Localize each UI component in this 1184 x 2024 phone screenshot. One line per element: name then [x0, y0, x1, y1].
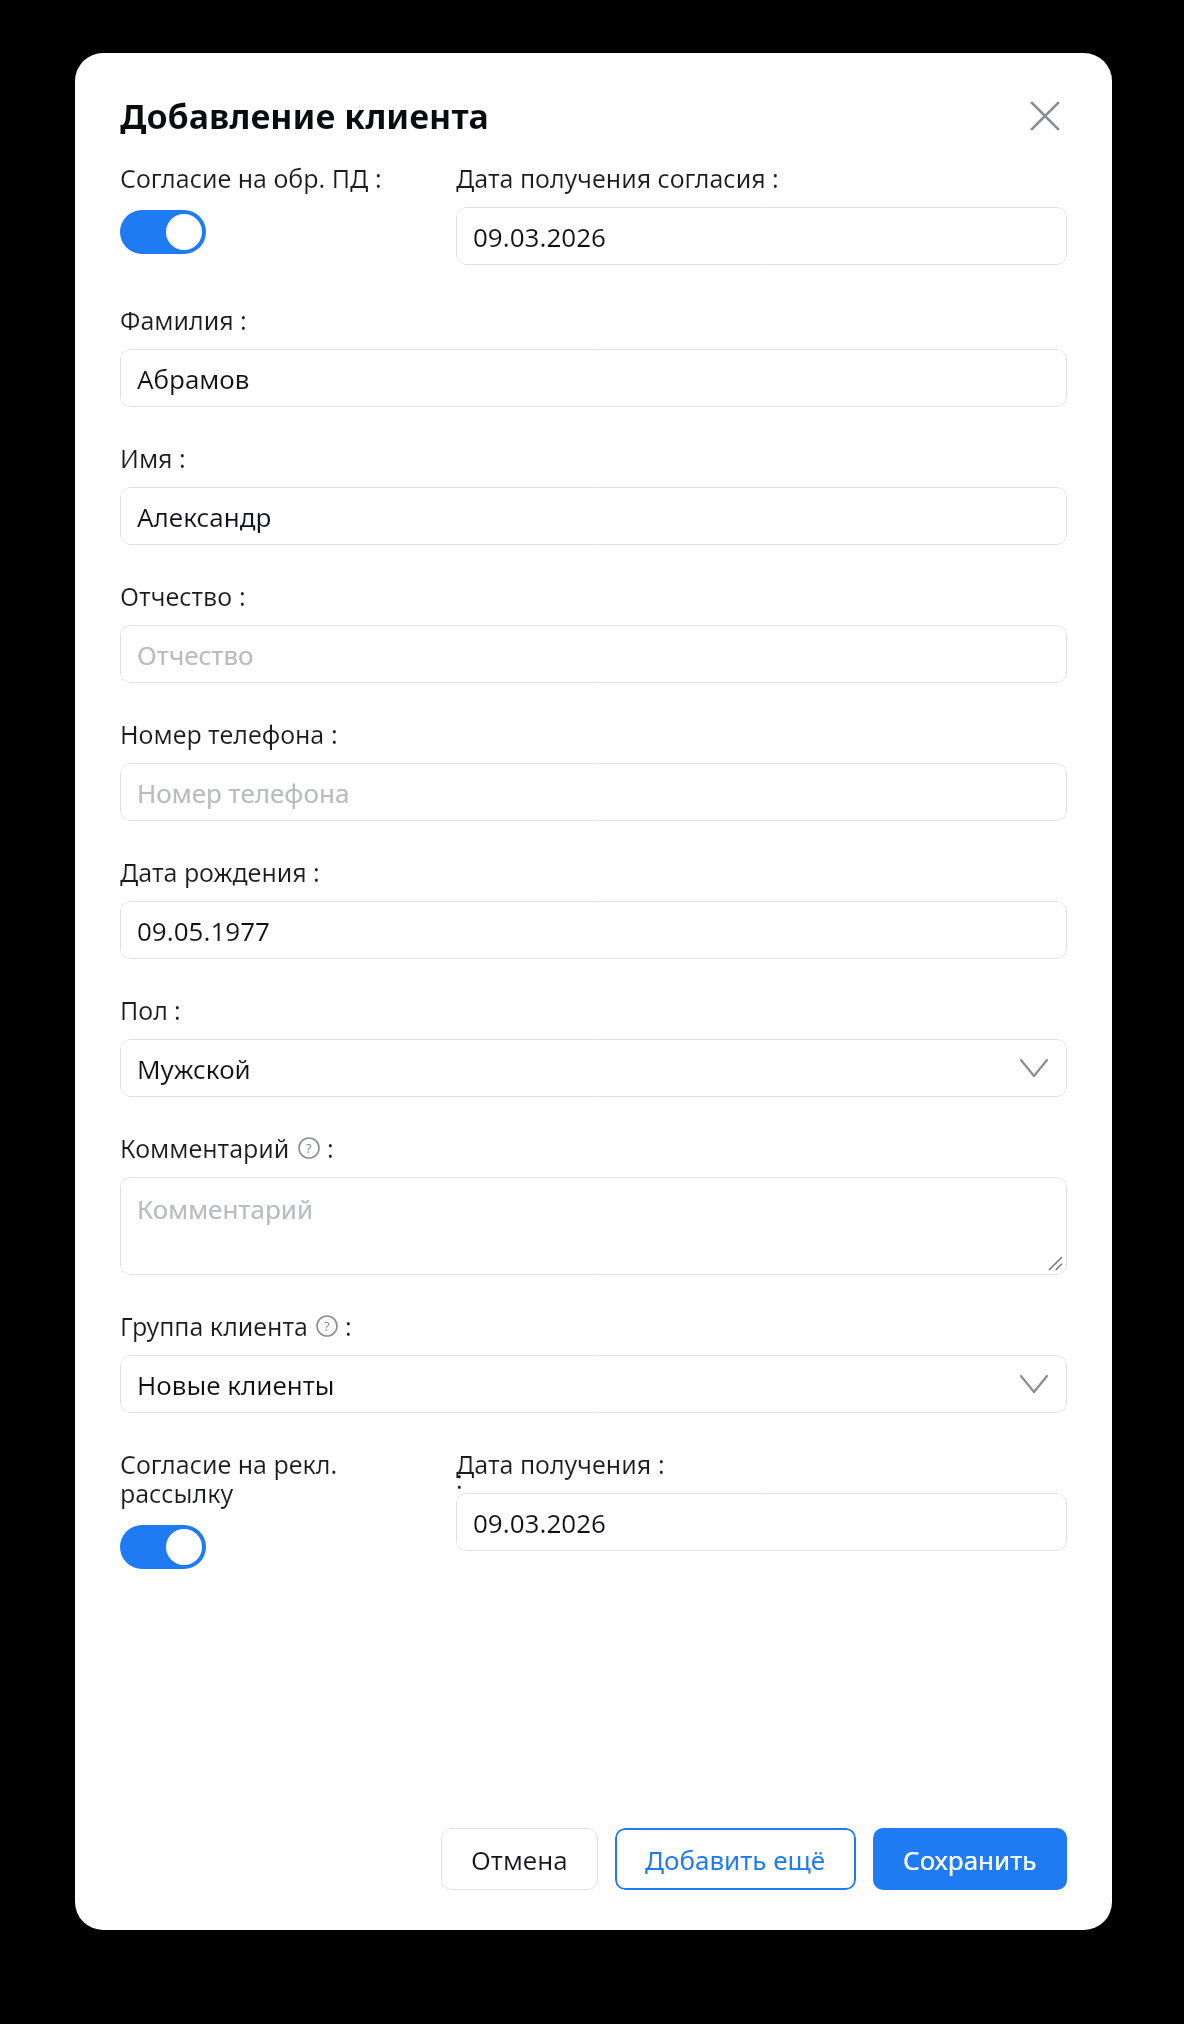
staticText: ?: [324, 1317, 330, 1335]
staticText: Мужской: [137, 1051, 251, 1086]
staticText: 09.03.2026: [473, 219, 606, 254]
staticText: :: [345, 1309, 352, 1343]
button[interactable]: 09.05.1977: [120, 901, 1067, 959]
staticText: Отчество: [137, 637, 254, 672]
staticText: Добавить ещё: [645, 1842, 826, 1877]
staticText: Комментарий: [120, 1131, 290, 1165]
staticText: :: [327, 1131, 334, 1165]
staticText: Отмена: [471, 1842, 568, 1877]
staticText: :: [239, 579, 246, 613]
staticText: Отчество: [120, 579, 233, 613]
button[interactable]: Добавить ещё: [615, 1828, 856, 1890]
staticText: :: [375, 161, 382, 195]
staticText: Добавление клиента: [120, 93, 489, 139]
staticText: Дата рождения: [120, 855, 307, 889]
staticText: Новые клиенты: [137, 1367, 335, 1402]
staticText: :: [174, 993, 181, 1027]
other: Подсказка: [298, 1137, 320, 1159]
staticText: Александр: [137, 499, 272, 534]
staticText: Номер телефона: [120, 717, 325, 751]
button[interactable]: Новые клиенты: [120, 1355, 1067, 1413]
staticText: :: [240, 303, 247, 337]
staticText: ?: [306, 1139, 312, 1157]
button[interactable]: Сохранить: [873, 1828, 1067, 1890]
button[interactable]: 09.03.2026: [456, 1493, 1067, 1551]
staticText: Согласие на рекл. рассылку: [120, 1447, 456, 1510]
button[interactable]: Переключатель включён: [120, 1525, 206, 1569]
staticText: Фамилия: [120, 303, 234, 337]
button[interactable]: Отчество: [120, 625, 1067, 683]
button[interactable]: Переключатель включён: [120, 210, 206, 254]
button[interactable]: 09.03.2026: [456, 207, 1067, 265]
staticText: Группа клиента: [120, 1309, 308, 1343]
button[interactable]: Абрамов: [120, 349, 1067, 407]
staticText: Дата получения согласия: [456, 161, 766, 195]
staticText: Дата получения: [456, 1447, 652, 1481]
button[interactable]: Номер телефона: [120, 763, 1067, 821]
button[interactable]: Комментарий: [120, 1177, 1067, 1275]
staticText: Сохранить: [903, 1842, 1037, 1877]
button[interactable]: Мужской: [120, 1039, 1067, 1097]
other: Подсказка: [316, 1315, 338, 1337]
staticText: Имя: [120, 441, 173, 475]
staticText: 09.05.1977: [137, 913, 270, 948]
staticText: Комментарий: [137, 1191, 314, 1226]
staticText: 09.03.2026: [473, 1505, 606, 1540]
staticText: :: [179, 441, 186, 475]
staticText: Согласие на обр. ПД: [120, 161, 369, 195]
button[interactable]: Александр: [120, 487, 1067, 545]
staticText: :: [772, 161, 779, 195]
staticText: Абрамов: [137, 361, 250, 396]
staticText: Номер телефона: [137, 775, 350, 810]
staticText: :: [313, 855, 320, 889]
staticText: :: [331, 717, 338, 751]
staticText: Пол: [120, 993, 168, 1027]
staticText: :: [658, 1447, 665, 1481]
button[interactable]: Отмена: [441, 1828, 598, 1890]
button[interactable]: Закрыть: [1023, 94, 1067, 138]
